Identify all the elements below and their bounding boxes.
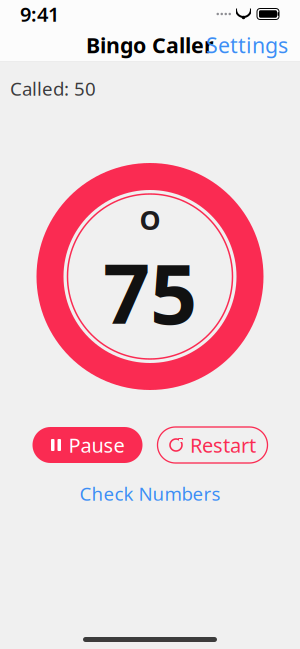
button[interactable]: Check Numbers — [65, 472, 234, 515]
staticText: 9:41 — [20, 1, 59, 27]
staticText: Check Numbers — [79, 481, 220, 506]
staticText: Bingo Caller — [86, 31, 214, 59]
staticText: Called: 50 — [10, 76, 96, 101]
button[interactable]: Restart — [157, 427, 267, 463]
staticText: O — [139, 202, 160, 237]
staticText: 75 — [103, 237, 197, 347]
staticText: Pause — [68, 432, 124, 458]
button[interactable]: Settings — [194, 24, 300, 66]
staticText: Restart — [190, 432, 256, 458]
button[interactable]: Pause — [32, 427, 142, 463]
staticText: Settings — [206, 31, 288, 59]
